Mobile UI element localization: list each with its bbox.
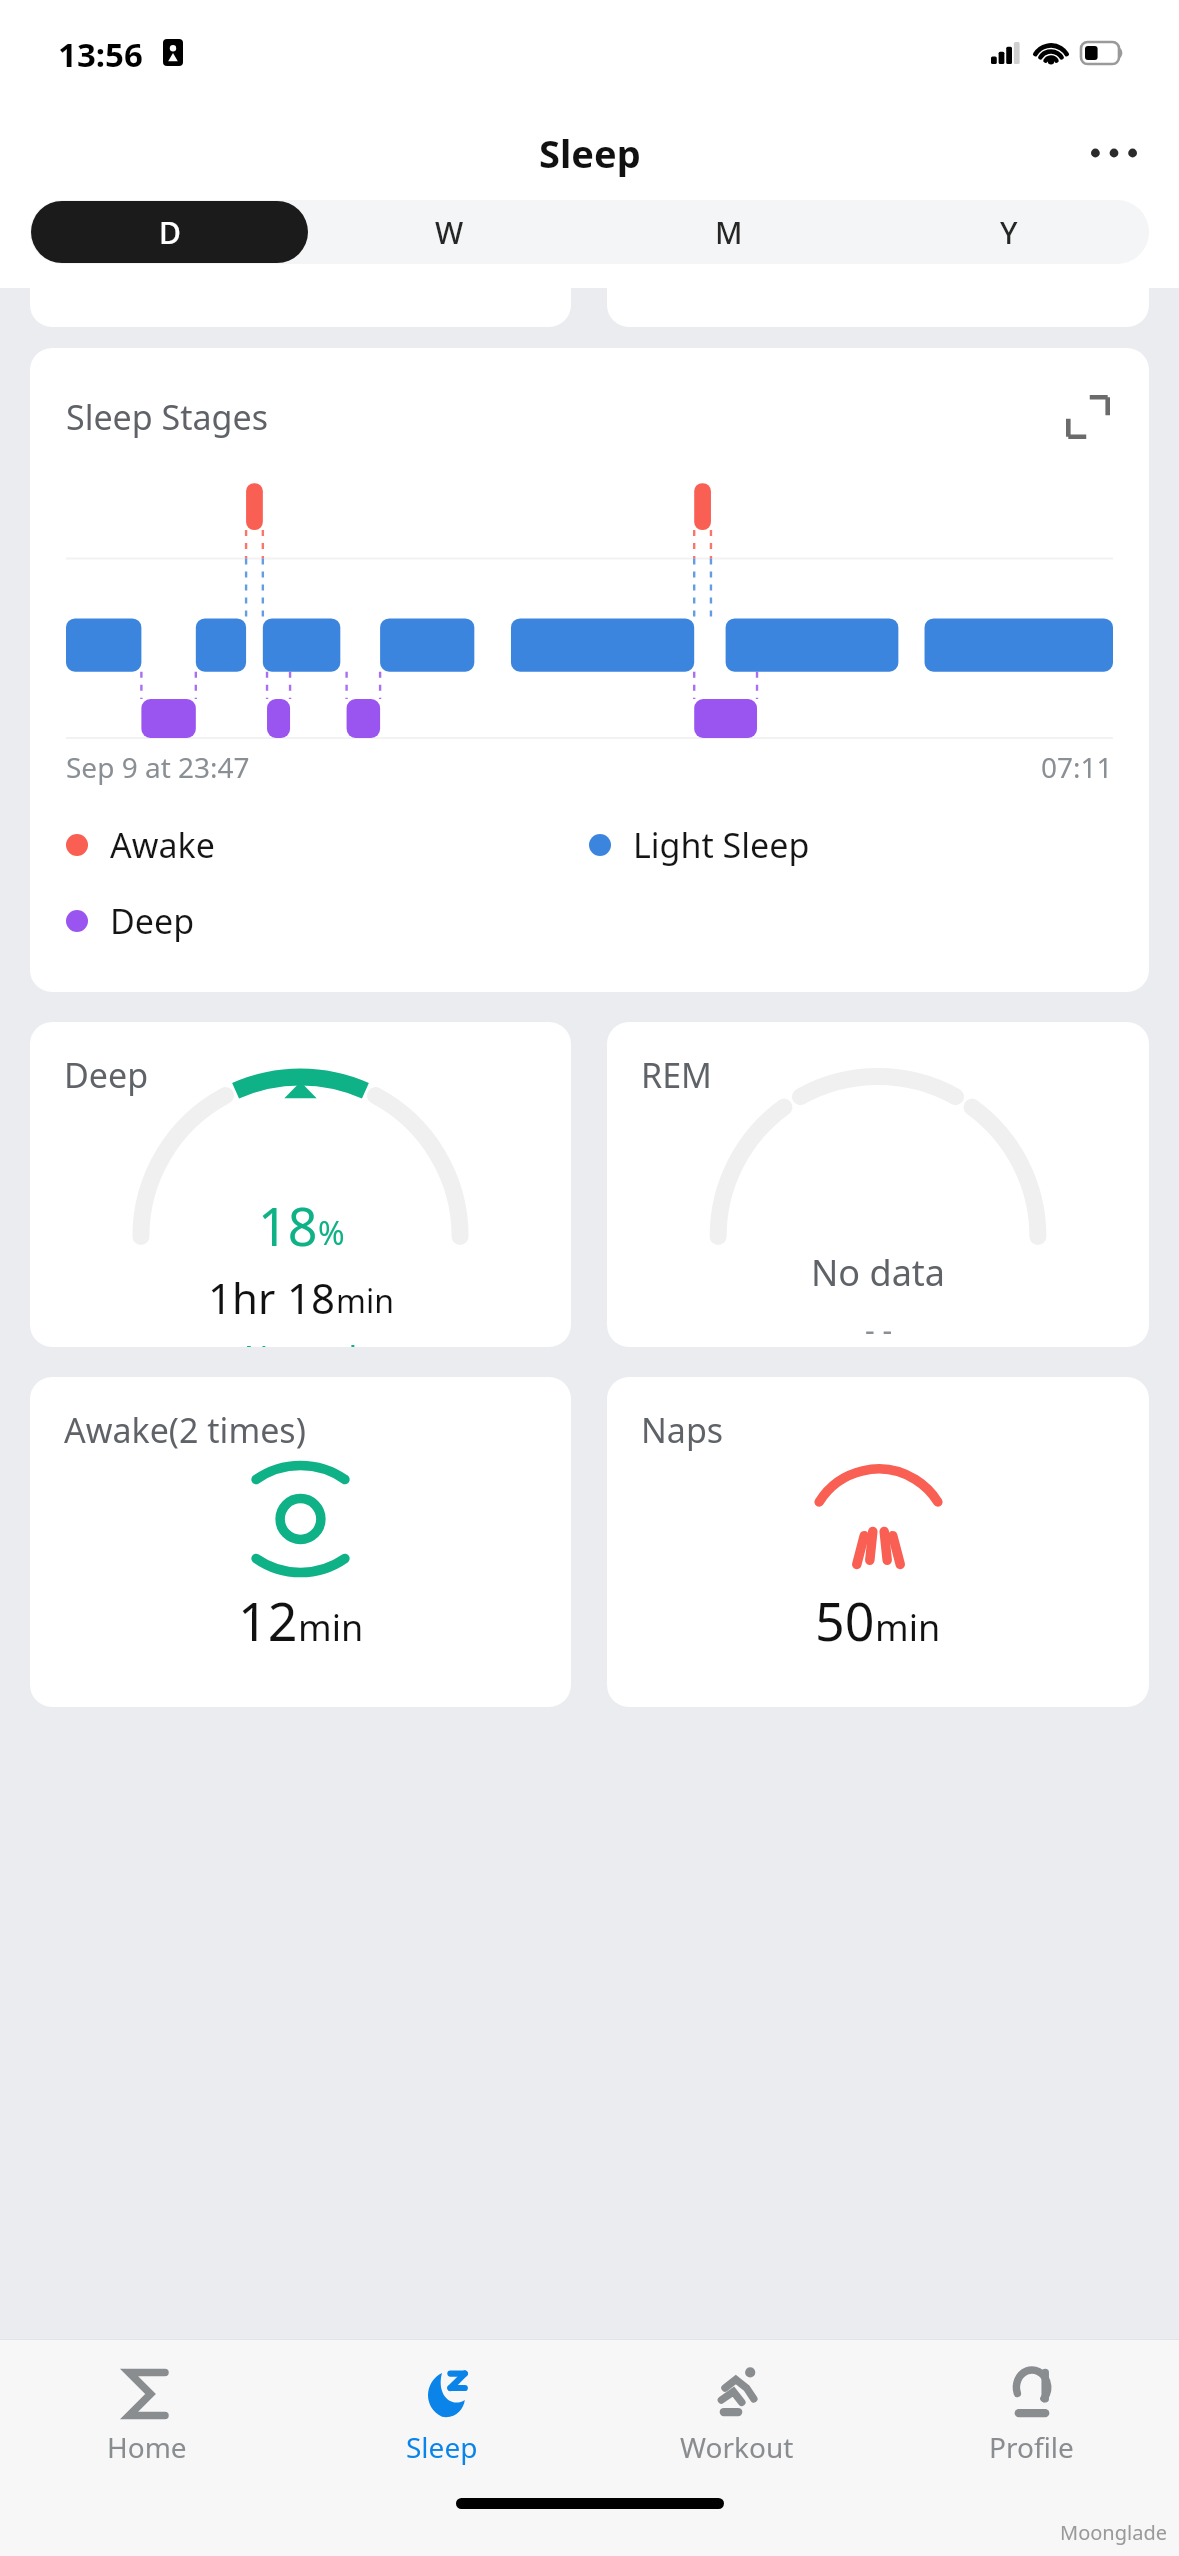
staticText: Deep	[64, 1052, 149, 1098]
staticText: 13:56	[58, 32, 143, 77]
button[interactable]: Naps	[607, 1377, 1149, 1707]
button[interactable]: Home	[0, 2340, 294, 2490]
button[interactable]: Deep	[30, 1022, 571, 1347]
staticText: 18	[258, 1190, 318, 1261]
staticText: D	[159, 212, 181, 253]
staticText: 50	[815, 1585, 875, 1656]
staticText: 07:11	[1041, 748, 1113, 786]
button[interactable]: W	[310, 201, 588, 263]
staticText: Sleep	[406, 2428, 478, 2466]
button[interactable]: Workout	[589, 2340, 884, 2490]
staticText: Awake(2 times)	[64, 1407, 306, 1453]
staticText: Sleep	[539, 127, 641, 179]
staticText: M	[715, 212, 743, 253]
button[interactable]: Sleep Stages	[30, 348, 1149, 992]
staticText: min	[336, 1279, 394, 1323]
staticText: Y	[1000, 212, 1018, 253]
staticText: Naps	[641, 1407, 724, 1453]
staticText: 18	[287, 1269, 336, 1326]
staticText: Normal	[244, 1336, 358, 1347]
staticText: Sep 9 at 23:47	[66, 748, 250, 786]
staticText: 12	[238, 1585, 298, 1656]
staticText: min	[298, 1603, 364, 1652]
staticText: Workout	[680, 2428, 794, 2466]
button[interactable]: Awake(2 times)	[30, 1377, 571, 1707]
staticText: Light Sleep	[633, 822, 810, 868]
staticText: - -	[865, 1309, 893, 1347]
staticText: No data	[811, 1248, 946, 1297]
button[interactable]: Sleep	[294, 2340, 589, 2490]
button[interactable]: Expand chart	[1057, 386, 1119, 448]
staticText: Profile	[989, 2428, 1074, 2466]
button[interactable]: M	[590, 201, 868, 263]
staticText: Awake	[110, 822, 215, 868]
staticText: 1hr	[208, 1269, 287, 1326]
staticText: W	[435, 212, 464, 253]
button[interactable]: REM	[607, 1022, 1149, 1347]
staticText: Deep	[110, 898, 195, 944]
staticText: Home	[107, 2428, 187, 2466]
staticText: min	[875, 1603, 941, 1652]
button[interactable]: More options	[1079, 118, 1149, 188]
staticText: Sleep Stages	[66, 394, 268, 440]
button[interactable]: D	[31, 201, 308, 263]
button[interactable]: Profile	[884, 2340, 1179, 2490]
staticText: Moonglade	[1060, 2519, 1167, 2546]
staticText: REM	[641, 1052, 712, 1098]
staticText: %	[318, 1211, 345, 1255]
button[interactable]: Y	[870, 201, 1148, 263]
